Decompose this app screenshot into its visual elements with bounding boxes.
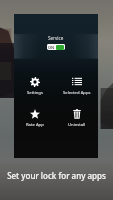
button[interactable]: Rate App	[14, 107, 56, 134]
staticText: Rate App	[26, 122, 44, 128]
staticText: Service	[48, 35, 64, 41]
button[interactable]: Uninstall	[56, 107, 98, 134]
button[interactable]: Service switch, on	[47, 44, 65, 50]
staticText: ON	[48, 45, 55, 50]
staticText: Set your lock for any apps	[7, 170, 106, 181]
staticText: Uninstall	[68, 122, 86, 128]
staticText: Selected Apps	[63, 90, 91, 96]
button[interactable]: Selected Apps	[56, 75, 98, 102]
staticText: Settings	[27, 90, 43, 96]
button[interactable]: Settings	[14, 75, 56, 102]
